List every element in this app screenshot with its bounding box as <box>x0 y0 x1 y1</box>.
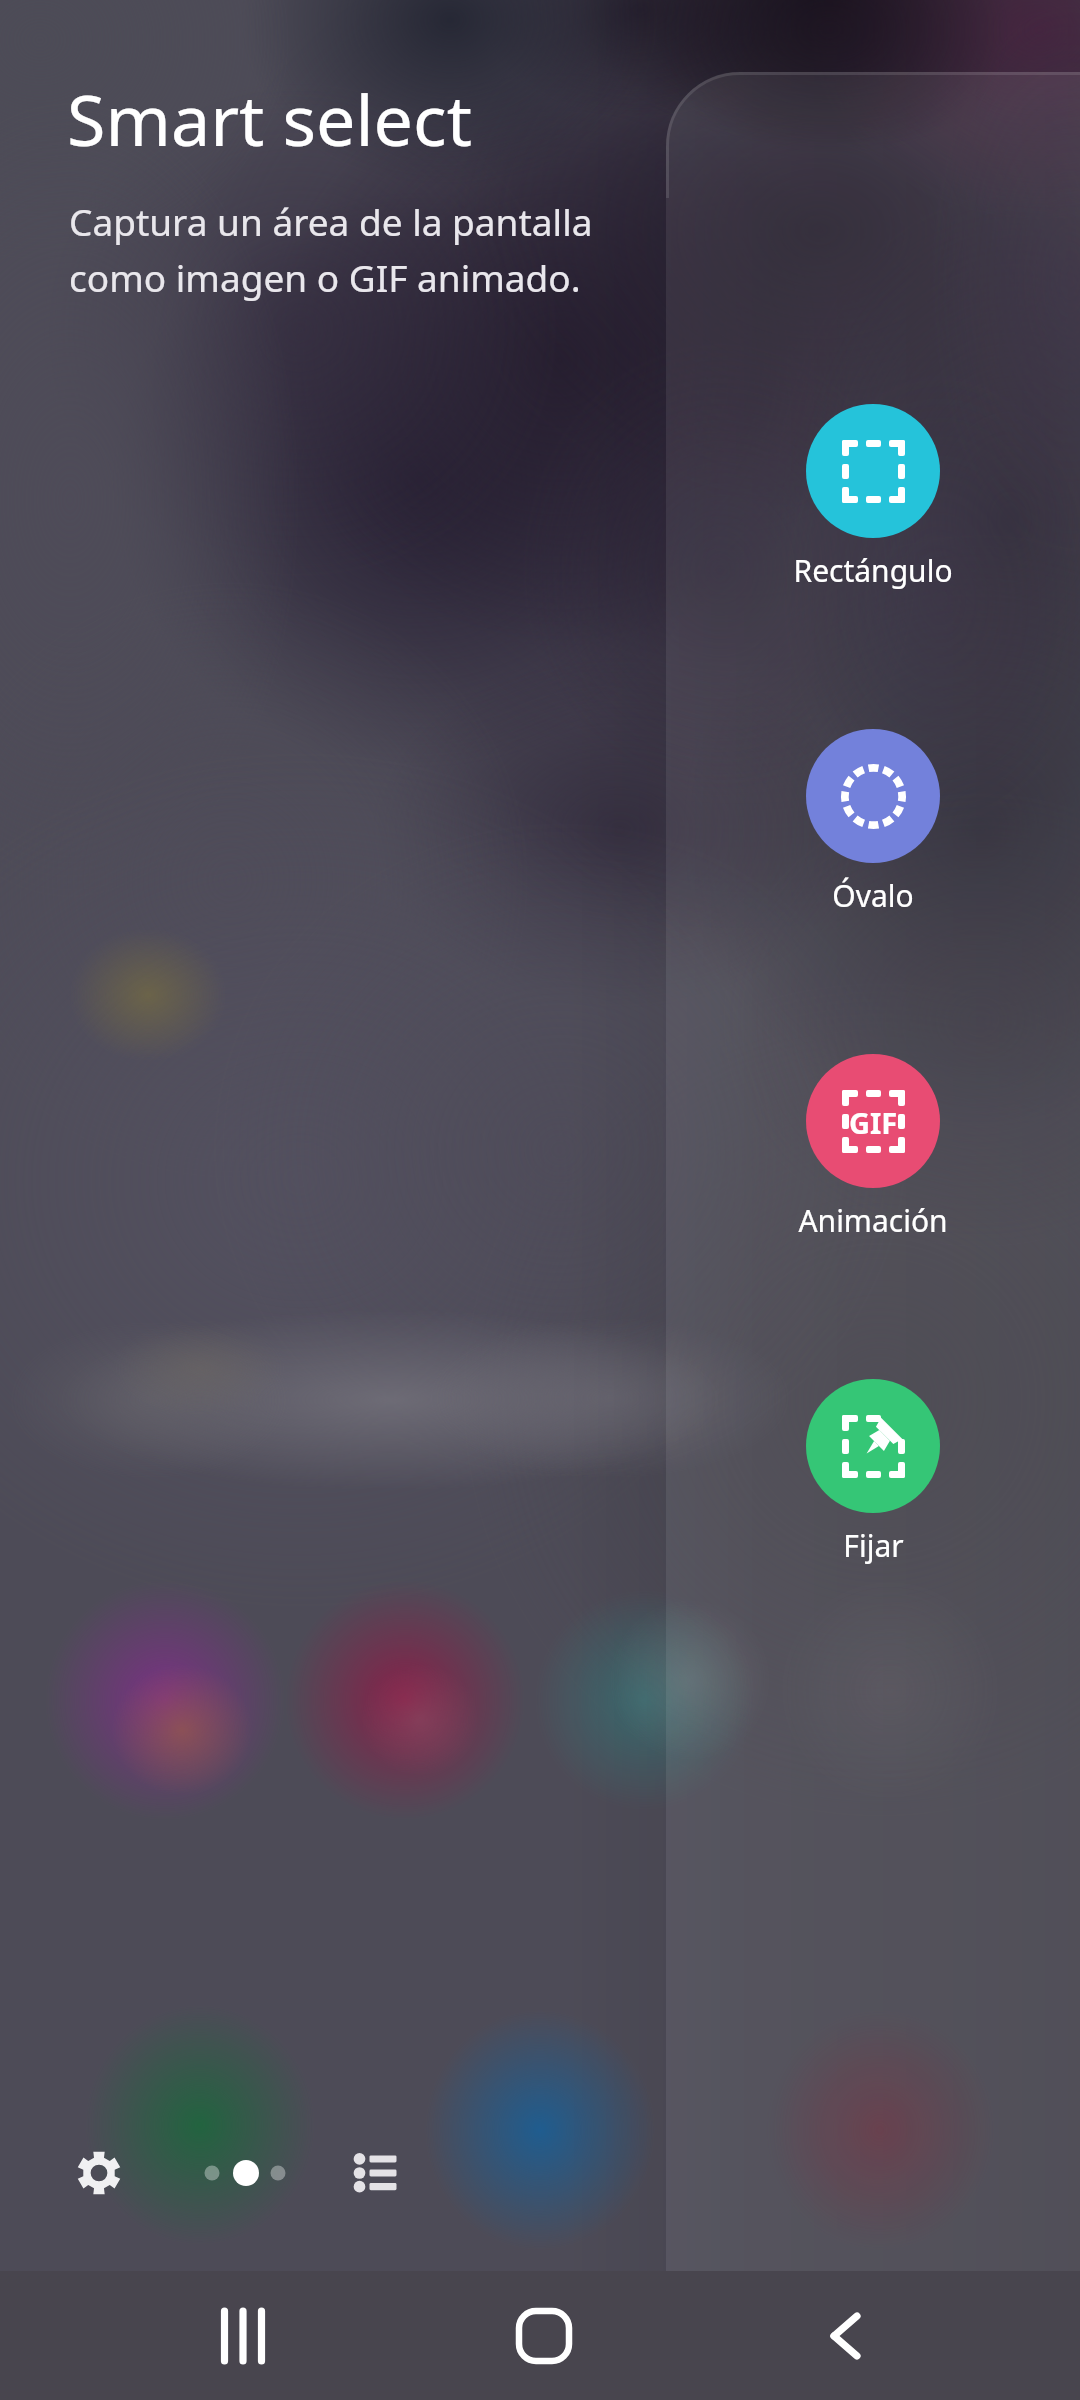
button[interactable]: Óvalo <box>713 729 1033 916</box>
button[interactable]: List view <box>332 2131 416 2215</box>
button[interactable]: Settings <box>57 2131 141 2215</box>
button[interactable]: Recents <box>205 2298 281 2374</box>
staticText: GIF <box>849 1103 898 1142</box>
button[interactable] <box>186 2141 306 2205</box>
button[interactable]: Back <box>807 2298 883 2374</box>
staticText: Captura un área de la pantalla como imag… <box>69 196 593 303</box>
staticText: Óvalo <box>832 875 914 916</box>
staticText: Fijar <box>843 1525 904 1566</box>
staticText: Animación <box>798 1200 948 1241</box>
staticText: Rectángulo <box>793 550 953 591</box>
staticText: Smart select <box>67 71 472 166</box>
button[interactable]: Fijar <box>713 1379 1033 1566</box>
button[interactable]: Home <box>506 2298 582 2374</box>
button[interactable]: Rectángulo <box>713 404 1033 591</box>
button[interactable]: GIF <box>713 1054 1033 1241</box>
